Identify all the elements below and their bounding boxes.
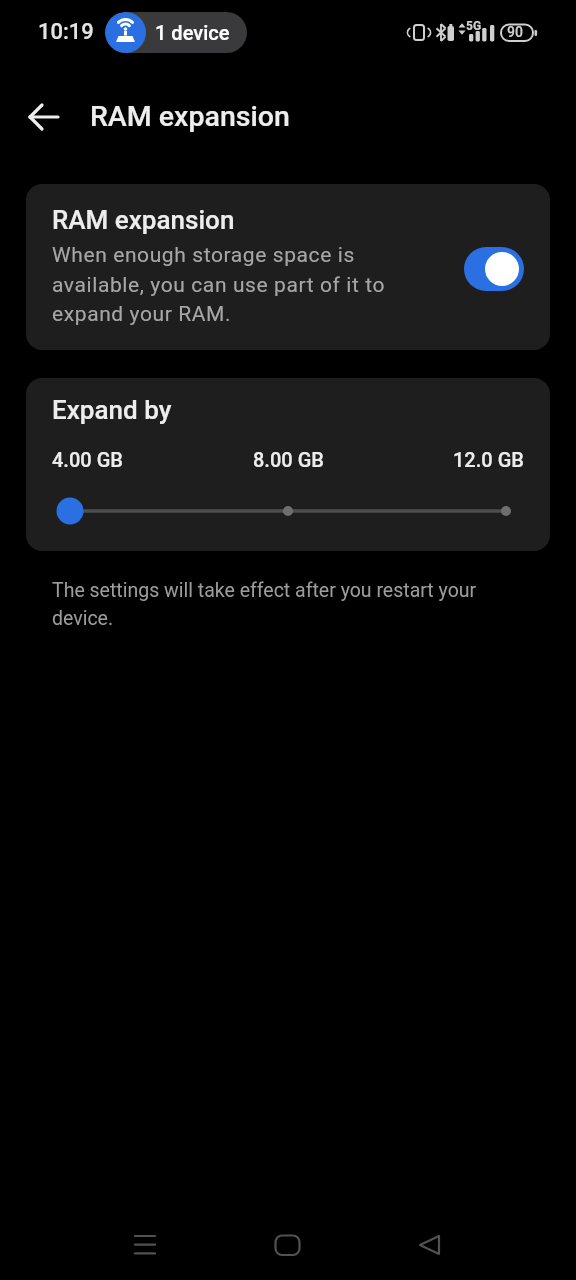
staticText: 10:19: [38, 19, 94, 45]
staticText: The settings will take effect after you …: [52, 579, 477, 630]
staticText: 4.00 GB: [52, 448, 123, 471]
button[interactable]: [275, 1234, 299, 1258]
staticText: 12.0 GB: [453, 448, 524, 471]
staticText: RAM expansion: [52, 205, 235, 235]
staticText: When enough storage space is available, …: [52, 243, 386, 326]
staticText: Expand by: [52, 395, 172, 425]
button[interactable]: Expand by: [26, 378, 550, 551]
staticText: 5G: [466, 19, 482, 33]
button[interactable]: 1 device: [105, 12, 247, 53]
button[interactable]: [28, 100, 62, 134]
button[interactable]: [134, 1233, 156, 1257]
button[interactable]: [417, 1234, 441, 1256]
staticText: 90: [507, 24, 523, 40]
staticText: 8.00 GB: [253, 448, 324, 471]
staticText: 1 device: [155, 21, 230, 44]
button[interactable]: RAM expansion: [26, 184, 550, 350]
button[interactable]: [26, 497, 550, 525]
staticText: RAM expansion: [90, 100, 290, 133]
button[interactable]: [464, 247, 524, 291]
